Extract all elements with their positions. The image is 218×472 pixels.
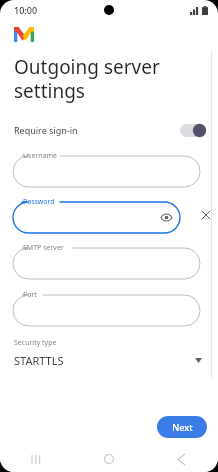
staticText: Security type <box>14 338 57 348</box>
staticText: Username <box>23 151 58 161</box>
staticText: Require sign-in <box>14 124 78 136</box>
staticText: Password <box>23 197 55 207</box>
button[interactable]: Username <box>13 151 200 187</box>
button[interactable]: Home <box>72 446 145 472</box>
button[interactable]: SMTP server <box>13 243 200 279</box>
button[interactable]: Clear password <box>198 207 214 223</box>
staticText: Outgoing server settings <box>14 54 160 103</box>
button[interactable]: Recent apps <box>0 446 72 472</box>
staticText: STARTTLS <box>14 353 64 368</box>
button[interactable]: Show password <box>158 209 174 225</box>
button[interactable]: Back <box>145 446 218 472</box>
button[interactable]: Require sign-in toggle <box>180 124 206 137</box>
button[interactable]: Password <box>13 197 180 233</box>
button[interactable]: Port <box>13 290 200 326</box>
button[interactable]: Security type <box>0 338 218 368</box>
button[interactable]: Require sign-in <box>0 118 218 142</box>
button[interactable]: Next <box>157 416 207 438</box>
staticText: 10:00 <box>14 4 38 16</box>
staticText: Port <box>23 290 37 300</box>
staticText: SMTP server <box>23 243 64 253</box>
staticText: Next <box>172 421 193 433</box>
